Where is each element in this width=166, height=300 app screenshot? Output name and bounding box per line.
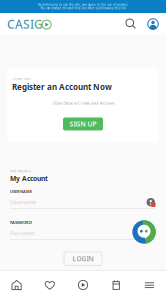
staticText: SIGN UP <box>69 120 96 128</box>
staticText: Username <box>10 199 36 206</box>
staticText: A <box>15 16 23 32</box>
staticText: My Account <box>10 174 48 183</box>
staticText: I'M NEW HERE <box>12 77 30 80</box>
staticText: 3 Easy Steps to Create your Account <box>52 100 114 105</box>
button[interactable]: Live chat <box>132 220 156 244</box>
staticText: Password <box>10 230 34 237</box>
button[interactable]: Live <box>66 271 100 299</box>
staticText: USERNAME <box>10 189 32 194</box>
staticText: Register an Account Now <box>12 81 112 92</box>
button[interactable]: Menu <box>133 271 166 299</box>
staticText: G <box>34 16 43 32</box>
staticText: By continuing to use the site, you agree… <box>38 3 128 6</box>
button[interactable]: Account <box>142 13 164 35</box>
button[interactable]: Search <box>120 13 142 35</box>
button[interactable]: Home <box>0 271 33 299</box>
staticText: WELCOME BACK <box>10 169 31 173</box>
staticText: You can change this and find out more by… <box>40 6 125 10</box>
staticText: PASSWORD <box>10 220 32 225</box>
button[interactable]: Favourites <box>33 271 66 299</box>
button[interactable]: LOGIN <box>64 252 102 265</box>
staticText: S <box>23 16 30 32</box>
staticText: LOGIN <box>72 254 93 263</box>
button[interactable]: Calendar <box>100 271 133 299</box>
button[interactable]: SIGN UP <box>63 117 103 130</box>
staticText: C <box>7 16 15 32</box>
staticText: I <box>30 16 34 32</box>
